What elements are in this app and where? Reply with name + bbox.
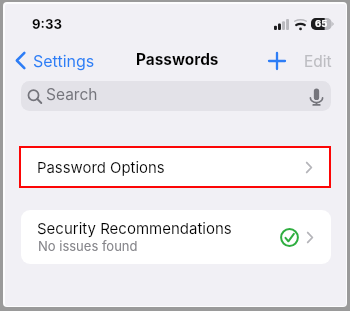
button[interactable]: Settings (12, 48, 101, 73)
staticText: Settings (33, 51, 95, 70)
button[interactable]: Edit (300, 50, 336, 72)
staticText: No issues found (38, 238, 138, 254)
staticText: Search (46, 85, 98, 104)
staticText: 65 (315, 18, 328, 29)
button[interactable]: Security Recommendations (21, 210, 331, 264)
button[interactable]: Password Options (21, 148, 329, 186)
staticText: Security Recommendations (37, 219, 232, 237)
staticText: Passwords (136, 50, 219, 69)
staticText: Password Options (37, 159, 165, 177)
staticText: 9:33 (32, 16, 62, 32)
staticText: Edit (304, 52, 332, 71)
button[interactable]: Search (21, 81, 331, 111)
button[interactable]: Add password (266, 50, 288, 72)
